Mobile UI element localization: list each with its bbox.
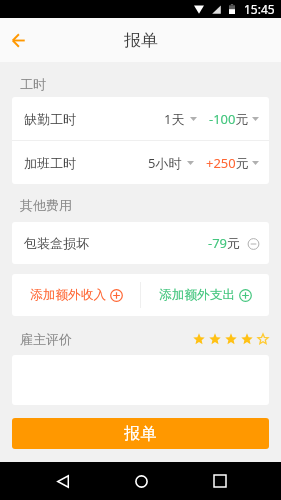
button[interactable]: Remove item bbox=[247, 238, 260, 250]
button[interactable]: Home bbox=[122, 462, 160, 500]
staticText: 5小时 bbox=[148, 154, 182, 172]
staticText: -100元 bbox=[209, 110, 249, 128]
staticText: 缺勤工时 bbox=[24, 111, 76, 127]
button[interactable]: Back bbox=[0, 18, 36, 62]
staticText: 其他费用 bbox=[20, 197, 72, 213]
staticText: +250元 bbox=[206, 154, 249, 172]
button[interactable]: 报单 bbox=[12, 418, 269, 449]
button[interactable]: 缺勤工时 bbox=[12, 97, 269, 140]
staticText: 15:45 bbox=[244, 1, 275, 17]
button[interactable]: Back bbox=[42, 462, 80, 500]
staticText: 1天 bbox=[164, 110, 185, 128]
button[interactable]: 添加额外支出 bbox=[141, 274, 269, 316]
button[interactable]: 加班工时 bbox=[12, 141, 269, 184]
staticText: 报单 bbox=[124, 30, 158, 51]
staticText: 雇主评价 bbox=[20, 331, 72, 347]
staticText: 添加额外收入 bbox=[30, 287, 107, 303]
staticText: 添加额外支出 bbox=[159, 287, 236, 303]
button[interactable]: 添加额外收入 bbox=[12, 274, 140, 316]
button[interactable]: Recent apps bbox=[201, 462, 239, 500]
staticText: 加班工时 bbox=[24, 155, 76, 171]
staticText: 包装盒损坏 bbox=[24, 235, 89, 251]
staticText: 报单 bbox=[124, 423, 157, 444]
staticText: 工时 bbox=[20, 76, 46, 92]
staticText: -79元 bbox=[208, 234, 241, 252]
